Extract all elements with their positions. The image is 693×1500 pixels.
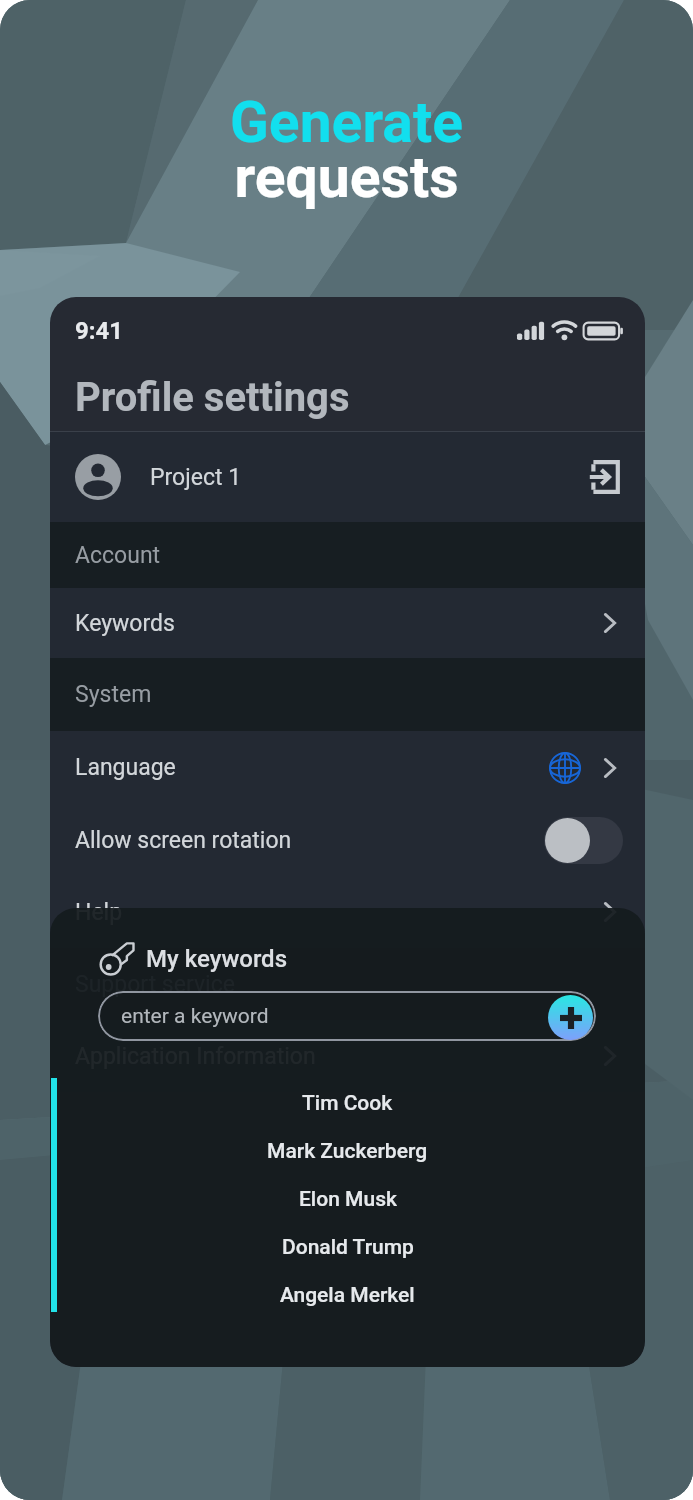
- button[interactable]: Log out: [583, 457, 623, 497]
- staticText: Elon Musk: [299, 1187, 397, 1212]
- staticText: Application Information: [75, 1043, 316, 1070]
- button[interactable]: Help: [50, 876, 645, 948]
- staticText: Profile settings: [75, 374, 350, 421]
- staticText: Keywords: [75, 610, 175, 637]
- button[interactable]: Elon Musk: [50, 1175, 645, 1223]
- button[interactable]: Angela Merkel: [50, 1271, 645, 1319]
- button[interactable]: Project 1: [50, 432, 645, 522]
- staticText: Generate requests: [230, 89, 463, 210]
- staticText: Angela Merkel: [280, 1283, 415, 1308]
- button[interactable]: Allow screen rotation: [50, 804, 645, 876]
- button[interactable]: My keywords: [100, 937, 288, 981]
- staticText: My keywords: [146, 945, 288, 973]
- staticText: Account: [75, 542, 161, 569]
- staticText: Project 1: [150, 464, 242, 491]
- button[interactable]: Donald Trump: [50, 1223, 645, 1271]
- button[interactable]: Add keyword: [548, 995, 593, 1040]
- staticText: Tim Cook: [302, 1091, 393, 1116]
- staticText: Donald Trump: [282, 1235, 414, 1260]
- button[interactable]: Keywords: [50, 588, 645, 658]
- staticText: Support service: [75, 971, 235, 998]
- staticText: enter a keyword: [121, 1004, 269, 1029]
- button[interactable]: enter a keyword: [98, 991, 596, 1041]
- staticText: Mark Zuckerberg: [267, 1139, 428, 1164]
- button[interactable]: Language: [50, 731, 645, 804]
- button[interactable]: Mark Zuckerberg: [50, 1127, 645, 1175]
- staticText: Language: [75, 754, 176, 781]
- staticText: System: [75, 681, 152, 708]
- staticText: Help: [75, 899, 123, 926]
- button[interactable]: Tim Cook: [50, 1079, 645, 1127]
- button[interactable]: [544, 817, 623, 864]
- staticText: Allow screen rotation: [75, 827, 292, 854]
- button[interactable]: Application Information: [50, 1020, 645, 1092]
- staticText: 9:41: [75, 317, 124, 345]
